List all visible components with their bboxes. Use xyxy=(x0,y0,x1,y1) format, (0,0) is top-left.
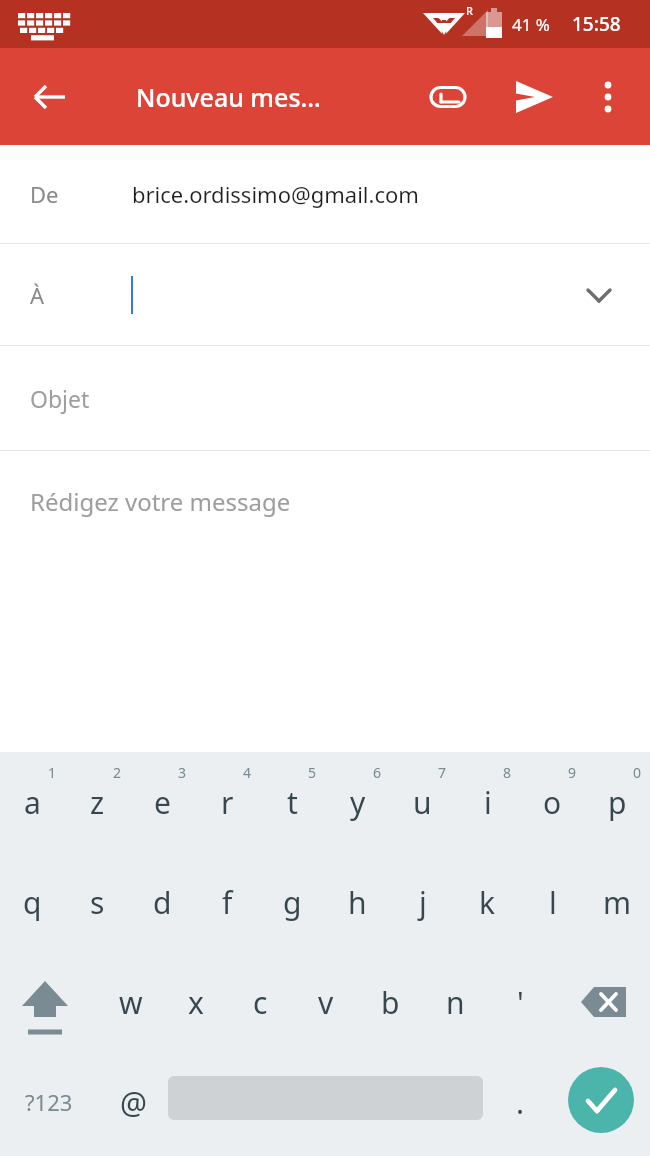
staticText: x xyxy=(188,982,204,1023)
staticText: 9 xyxy=(568,763,577,782)
button[interactable]: c xyxy=(228,952,293,1052)
button[interactable]: n xyxy=(423,952,488,1052)
button[interactable]: . xyxy=(490,1052,550,1152)
staticText: l xyxy=(549,882,557,923)
button[interactable]: h xyxy=(325,852,390,952)
button[interactable]: r xyxy=(195,752,260,852)
staticText: Rédigez votre message xyxy=(30,485,291,518)
staticText: w xyxy=(119,982,143,1023)
staticText: y xyxy=(350,782,366,823)
button[interactable]: a xyxy=(0,752,65,852)
staticText: Nouveau mes… xyxy=(136,80,321,114)
staticText: c xyxy=(253,982,268,1023)
staticText: q xyxy=(23,882,42,923)
button[interactable]: Shift xyxy=(0,952,98,1052)
staticText: . xyxy=(516,1082,525,1123)
button[interactable]: t xyxy=(260,752,325,852)
button[interactable]: À xyxy=(0,244,650,345)
button[interactable]: e xyxy=(130,752,195,852)
button[interactable]: Enter xyxy=(568,1067,634,1133)
staticText: a xyxy=(24,782,41,823)
button[interactable]: Attach file xyxy=(420,69,476,125)
staticText: z xyxy=(90,782,105,823)
button[interactable]: @ xyxy=(98,1052,168,1152)
button[interactable]: i xyxy=(455,752,520,852)
staticText: R xyxy=(466,3,473,18)
staticText: k xyxy=(479,882,496,923)
button[interactable]: u xyxy=(390,752,455,852)
button[interactable]: Rédigez votre message xyxy=(0,451,650,751)
staticText: t xyxy=(287,782,298,823)
staticText: b xyxy=(381,982,400,1023)
button[interactable]: x xyxy=(163,952,228,1052)
staticText: e xyxy=(154,782,171,823)
staticText: 15:58 xyxy=(572,11,621,37)
button[interactable]: More options xyxy=(583,72,633,122)
staticText: g xyxy=(283,882,302,923)
staticText: p xyxy=(608,782,627,823)
button[interactable]: De xyxy=(0,145,650,243)
staticText: i xyxy=(484,782,492,823)
button[interactable]: o xyxy=(520,752,585,852)
button[interactable]: ?123 xyxy=(0,1052,98,1152)
staticText: 1 xyxy=(48,763,57,782)
staticText: h xyxy=(348,882,367,923)
staticText: 5 xyxy=(308,763,317,782)
button[interactable]: Objet xyxy=(0,346,650,450)
button[interactable]: d xyxy=(130,852,195,952)
button[interactable]: p xyxy=(585,752,650,852)
staticText: d xyxy=(153,882,172,923)
staticText: @ xyxy=(120,1082,147,1123)
staticText: f xyxy=(222,882,233,923)
staticText: o xyxy=(543,782,562,823)
staticText: 6 xyxy=(373,763,382,782)
staticText: Objet xyxy=(30,383,90,414)
button[interactable]: w xyxy=(98,952,163,1052)
staticText: ?123 xyxy=(25,1087,73,1117)
button[interactable]: f xyxy=(195,852,260,952)
staticText: 7 xyxy=(438,763,447,782)
staticText: v xyxy=(318,982,334,1023)
button[interactable]: Backspace xyxy=(560,952,650,1052)
button[interactable]: Back xyxy=(22,69,78,125)
button[interactable]: k xyxy=(455,852,520,952)
button[interactable]: s xyxy=(65,852,130,952)
button[interactable]: z xyxy=(65,752,130,852)
button[interactable]: m xyxy=(585,852,650,952)
button[interactable]: b xyxy=(358,952,423,1052)
staticText: De xyxy=(30,179,59,209)
button[interactable]: l xyxy=(520,852,585,952)
button[interactable]: j xyxy=(390,852,455,952)
staticText: 0 xyxy=(633,763,642,782)
staticText: ' xyxy=(517,982,524,1023)
staticText: À xyxy=(30,280,45,310)
button[interactable]: Expand recipients xyxy=(577,273,621,317)
staticText: 41 % xyxy=(512,13,550,36)
staticText: 8 xyxy=(503,763,512,782)
staticText: u xyxy=(413,782,432,823)
staticText: s xyxy=(90,882,105,923)
staticText: r xyxy=(221,782,234,823)
staticText: 3 xyxy=(178,763,187,782)
staticText: 2 xyxy=(113,763,122,782)
button[interactable]: y xyxy=(325,752,390,852)
button[interactable]: v xyxy=(293,952,358,1052)
staticText: n xyxy=(446,982,465,1023)
staticText: j xyxy=(419,882,427,923)
button[interactable]: q xyxy=(0,852,65,952)
button[interactable]: g xyxy=(260,852,325,952)
staticText: brice.ordissimo@gmail.com xyxy=(132,179,419,209)
staticText: m xyxy=(603,882,632,923)
staticText: 4 xyxy=(243,763,252,782)
button[interactable]: ' xyxy=(488,952,553,1052)
button[interactable]: Send xyxy=(505,69,561,125)
